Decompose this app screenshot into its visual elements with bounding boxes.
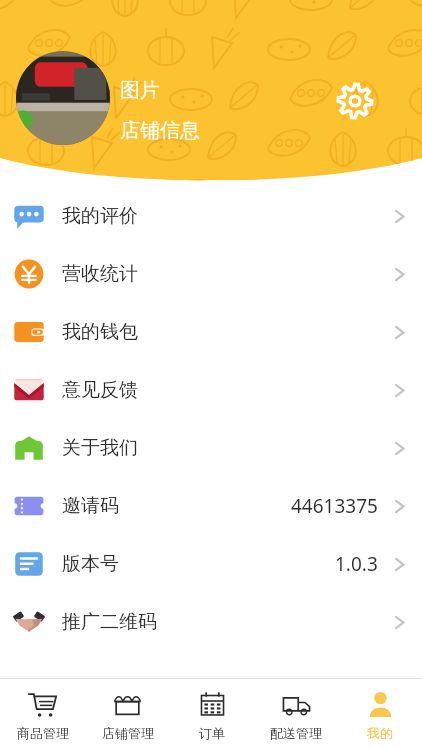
staticText: 意见反馈 <box>62 378 138 402</box>
staticText: 我的 <box>367 725 393 741</box>
staticText: 关于我们 <box>62 436 138 460</box>
button[interactable]: 店铺管理 <box>85 679 170 750</box>
button[interactable]: 我的 <box>338 679 422 750</box>
button[interactable]: 商品管理 <box>0 679 85 750</box>
button[interactable]: 订单 <box>170 679 254 750</box>
button[interactable]: 版本号 <box>0 535 422 593</box>
button[interactable]: 推广二维码 <box>0 593 422 651</box>
button[interactable]: 关于我们 <box>0 419 422 477</box>
staticText: 营收统计 <box>62 262 138 286</box>
staticText: 我的钱包 <box>62 320 138 344</box>
button[interactable]: 配送管理 <box>254 679 338 750</box>
staticText: 推广二维码 <box>62 610 157 634</box>
button[interactable]: Shop photo <box>16 51 110 145</box>
button[interactable]: Settings <box>334 80 376 122</box>
staticText: 商品管理 <box>17 725 69 741</box>
button[interactable]: 我的钱包 <box>0 303 422 361</box>
staticText: 店铺管理 <box>102 725 154 741</box>
staticText: 店铺信息 <box>120 118 200 143</box>
staticText: 订单 <box>199 725 225 741</box>
staticText: 配送管理 <box>270 725 322 741</box>
button[interactable]: 意见反馈 <box>0 361 422 419</box>
staticText: 44613375 <box>291 493 378 519</box>
staticText: 1.0.3 <box>335 551 378 577</box>
button[interactable]: 我的评价 <box>0 187 422 245</box>
staticText: 邀请码 <box>62 494 119 518</box>
staticText: 图片 <box>120 78 160 103</box>
staticText: 我的评价 <box>62 204 138 228</box>
button[interactable]: 邀请码 <box>0 477 422 535</box>
staticText: 版本号 <box>62 552 119 576</box>
button[interactable]: 营收统计 <box>0 245 422 303</box>
